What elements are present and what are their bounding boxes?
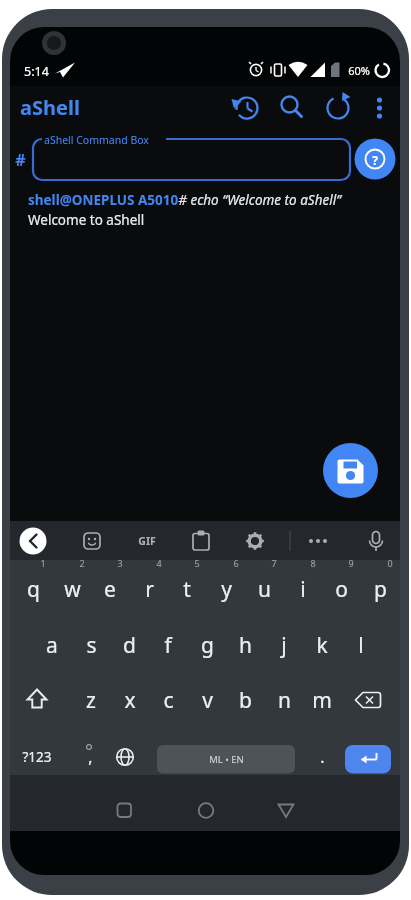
button[interactable]: j xyxy=(265,625,303,665)
staticText: l xyxy=(358,631,364,660)
staticText: . xyxy=(320,746,325,768)
staticText: w xyxy=(64,575,81,604)
button[interactable]: a xyxy=(33,625,71,665)
button[interactable]: . xyxy=(310,742,334,772)
button[interactable] xyxy=(106,740,144,776)
button[interactable]: n xyxy=(265,680,303,720)
button[interactable]: x xyxy=(111,680,149,720)
staticText: , xyxy=(88,746,93,768)
staticText: ? xyxy=(372,152,378,168)
button[interactable] xyxy=(18,526,48,556)
staticText: aShell xyxy=(20,94,80,121)
button[interactable]: b xyxy=(226,680,264,720)
button[interactable]: k xyxy=(303,625,341,665)
button[interactable]: e xyxy=(91,569,129,609)
staticText: j xyxy=(281,631,287,660)
staticText: v xyxy=(202,686,213,715)
staticText: ML • EN xyxy=(209,753,244,766)
staticText: t xyxy=(183,575,191,604)
button[interactable] xyxy=(109,795,139,825)
button[interactable]: h xyxy=(226,625,264,665)
button[interactable] xyxy=(303,526,333,556)
button[interactable]: t xyxy=(168,569,206,609)
staticText: a xyxy=(46,631,58,660)
staticText: f xyxy=(164,631,172,660)
button[interactable]: w xyxy=(53,569,91,609)
staticText: 8 xyxy=(310,557,316,569)
button[interactable]: u xyxy=(245,569,283,609)
button[interactable]: c xyxy=(149,680,187,720)
button[interactable] xyxy=(77,526,107,556)
staticText: 9 xyxy=(348,557,354,569)
staticText: 60% xyxy=(348,63,370,78)
button[interactable]: d xyxy=(110,625,148,665)
button[interactable]: i xyxy=(284,569,322,609)
button[interactable] xyxy=(272,88,312,128)
button[interactable]: p xyxy=(361,569,399,609)
button[interactable]: y xyxy=(207,569,245,609)
button[interactable]: z xyxy=(72,680,110,720)
button[interactable] xyxy=(191,795,221,825)
staticText: k xyxy=(316,631,328,660)
button[interactable] xyxy=(318,88,358,128)
button[interactable]: f xyxy=(149,625,187,665)
staticText: Welcome to aShell xyxy=(28,211,145,229)
button[interactable] xyxy=(361,526,391,556)
staticText: 0 xyxy=(387,557,393,569)
button[interactable]: GIF xyxy=(127,531,167,551)
staticText: 1 xyxy=(40,557,46,569)
staticText: 2 xyxy=(79,557,85,569)
button[interactable]: m xyxy=(303,680,341,720)
button[interactable]: s xyxy=(72,625,110,665)
button[interactable] xyxy=(271,795,301,825)
button[interactable] xyxy=(351,682,389,718)
button[interactable] xyxy=(323,443,378,498)
staticText: n xyxy=(278,686,291,715)
staticText: 5 xyxy=(194,557,200,569)
staticText: GIF xyxy=(138,534,156,548)
button[interactable] xyxy=(360,88,400,128)
staticText: m xyxy=(312,686,332,715)
staticText: ?123 xyxy=(22,748,52,766)
staticText: q xyxy=(27,575,40,604)
staticText: s xyxy=(86,631,97,660)
staticText: g xyxy=(201,631,214,660)
staticText: # xyxy=(15,149,26,171)
button[interactable]: , xyxy=(78,742,102,772)
button[interactable]: ?123 xyxy=(15,744,59,770)
button[interactable] xyxy=(240,526,270,556)
staticText: 6 xyxy=(233,557,239,569)
staticText: e xyxy=(104,575,116,604)
button[interactable]: q xyxy=(14,569,52,609)
staticText: r xyxy=(145,575,154,604)
button[interactable]: r xyxy=(130,569,168,609)
button[interactable] xyxy=(186,526,216,556)
staticText: 7 xyxy=(271,557,277,569)
button[interactable]: g xyxy=(188,625,226,665)
button[interactable] xyxy=(355,139,396,180)
staticText: i xyxy=(300,575,306,604)
staticText: aShell Command Box xyxy=(44,133,149,147)
staticText: 4 xyxy=(156,557,162,569)
button[interactable] xyxy=(345,745,391,774)
staticText: h xyxy=(239,631,252,660)
button[interactable]: o xyxy=(322,569,360,609)
button[interactable] xyxy=(33,139,350,180)
staticText: p xyxy=(374,575,387,604)
staticText: 3 xyxy=(117,557,123,569)
button[interactable] xyxy=(157,745,295,774)
staticText: b xyxy=(239,686,252,715)
staticText: x xyxy=(124,686,136,715)
staticText: d xyxy=(123,631,136,660)
staticText: c xyxy=(163,686,174,715)
staticText: u xyxy=(258,575,271,604)
staticText: shell@ONEPLUS A5010# echo “Welcome to aS… xyxy=(28,191,341,209)
button[interactable]: l xyxy=(342,625,380,665)
button[interactable]: v xyxy=(188,680,226,720)
staticText: o xyxy=(335,575,348,604)
staticText: 5:14 xyxy=(24,63,49,80)
button[interactable] xyxy=(227,88,267,128)
button[interactable] xyxy=(18,682,56,718)
staticText: y xyxy=(221,575,232,604)
staticText: z xyxy=(86,686,96,715)
